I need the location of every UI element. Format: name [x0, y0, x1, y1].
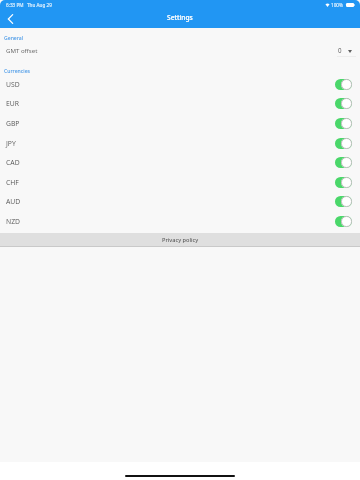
button[interactable]: Toggle JPY — [335, 138, 352, 149]
button[interactable]: USD — [0, 74, 360, 94]
button[interactable]: Toggle AUD — [335, 196, 352, 207]
staticText: GBP — [6, 119, 20, 128]
staticText: 6:33 PM — [6, 2, 24, 8]
staticText: Privacy policy — [162, 236, 199, 244]
button[interactable]: AUD — [0, 191, 360, 211]
button[interactable]: JPY — [0, 133, 360, 153]
button[interactable]: EUR — [0, 93, 360, 113]
button[interactable]: Toggle NZD — [335, 216, 352, 227]
staticText: JPY — [6, 139, 16, 148]
button[interactable]: Toggle EUR — [335, 98, 352, 109]
staticText: CHF — [6, 178, 19, 187]
staticText: 100% — [331, 2, 343, 8]
staticText: GMT offset — [6, 46, 38, 54]
staticText: 0 — [338, 46, 342, 54]
button[interactable]: GBP — [0, 113, 360, 133]
button[interactable]: Toggle CAD — [335, 157, 352, 168]
staticText: General — [4, 35, 24, 42]
staticText: Currencies — [4, 68, 31, 75]
button[interactable]: Privacy policy — [0, 233, 360, 247]
staticText: CAD — [6, 158, 20, 167]
button[interactable]: Toggle USD — [335, 79, 352, 90]
button[interactable]: Back — [0, 9, 20, 28]
button[interactable]: GMT offset — [0, 41, 360, 59]
staticText: USD — [6, 80, 20, 89]
staticText: EUR — [6, 99, 19, 108]
staticText: Settings — [167, 13, 193, 22]
staticText: Thu Aug 29 — [27, 2, 52, 8]
button[interactable]: Toggle CHF — [335, 177, 352, 188]
staticText: NZD — [6, 217, 21, 226]
staticText: AUD — [6, 197, 21, 206]
button[interactable]: CHF — [0, 172, 360, 192]
button[interactable]: Toggle GBP — [335, 118, 352, 129]
button[interactable]: CAD — [0, 152, 360, 172]
button[interactable]: NZD — [0, 211, 360, 231]
